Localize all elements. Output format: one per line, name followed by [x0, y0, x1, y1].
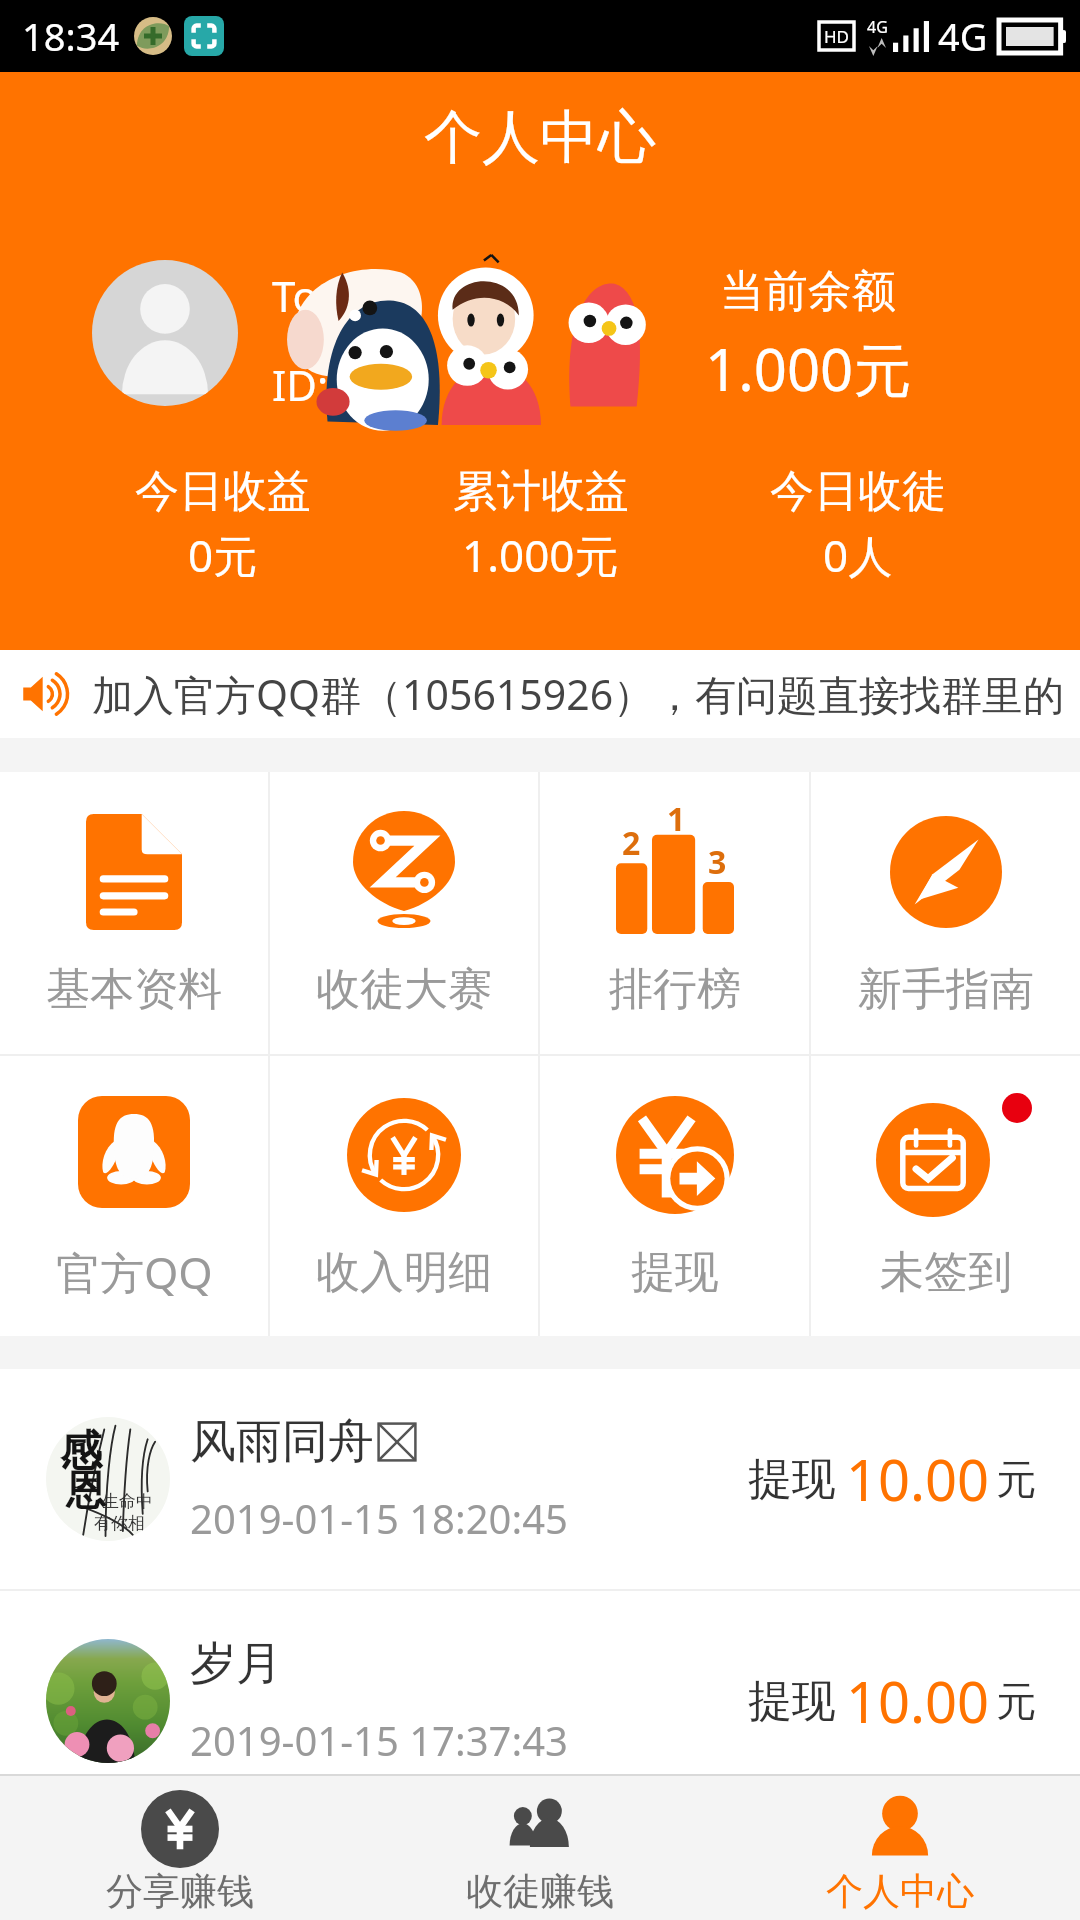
- button[interactable]: 个人中心: [720, 1776, 1080, 1920]
- staticText: 0元: [188, 525, 258, 585]
- staticText: 个人中心: [826, 1868, 974, 1915]
- staticText: 个人中心: [424, 101, 656, 174]
- staticText: 提现: [631, 1245, 719, 1300]
- button[interactable]: 加入官方QQ群（105615926），有问题直接找群里的客服: [0, 650, 1080, 738]
- staticText: 提现: [748, 1674, 836, 1729]
- button[interactable]: 岁月: [0, 1591, 1080, 1811]
- staticText: 排行榜: [609, 962, 741, 1017]
- staticText: 恩: [66, 1465, 106, 1515]
- button[interactable]: 收徒大赛: [270, 772, 538, 1054]
- staticText: 未签到: [880, 1245, 1012, 1300]
- staticText: 4G: [938, 10, 988, 62]
- staticText: 1.000元: [462, 525, 619, 585]
- button[interactable]: 收入明细: [270, 1056, 538, 1336]
- staticText: 今日收益: [135, 464, 311, 519]
- staticText: 生命中: [102, 1491, 153, 1512]
- staticText: 有你相: [94, 1513, 145, 1534]
- staticText: 当前余额: [720, 264, 896, 319]
- button[interactable]: 收徒赚钱: [360, 1776, 720, 1920]
- button[interactable]: 提现: [540, 1056, 809, 1336]
- staticText: 加入官方QQ群（105615926），有问题直接找群里的客服: [92, 666, 1080, 722]
- staticText: 今日收徒: [770, 464, 946, 519]
- staticText: HD: [824, 25, 850, 48]
- staticText: 元: [996, 1676, 1036, 1726]
- staticText: 提现: [748, 1452, 836, 1507]
- staticText: Tom...g: [272, 267, 417, 324]
- staticText: 10.00: [846, 1663, 990, 1739]
- button[interactable]: 感: [0, 1369, 1080, 1589]
- staticText: 基本资料: [46, 962, 222, 1017]
- staticText: 收入明细: [316, 1245, 492, 1300]
- button[interactable]: Profile avatar: [92, 260, 238, 406]
- button[interactable]: 基本资料: [0, 772, 268, 1054]
- staticText: 2: [622, 821, 641, 865]
- staticText: 收徒赚钱: [466, 1868, 614, 1915]
- staticText: 2019-01-15 18:20:45: [190, 1491, 568, 1545]
- staticText: 1: [667, 797, 686, 841]
- staticText: 1.000元: [705, 329, 912, 408]
- staticText: 新手指南: [858, 962, 1034, 1017]
- staticText: 岁月: [190, 1635, 282, 1693]
- staticText: 0人: [823, 525, 893, 585]
- staticText: 分享赚钱: [106, 1868, 254, 1915]
- staticText: 收徒大赛: [316, 962, 492, 1017]
- staticText: 2019-01-15 17:37:43: [190, 1713, 568, 1767]
- staticText: ID:1...5: [272, 356, 410, 413]
- staticText: 风雨同舟: [190, 1413, 374, 1471]
- button[interactable]: 未签到: [811, 1056, 1080, 1336]
- staticText: 累计收益: [453, 464, 629, 519]
- staticText: 官方QQ: [56, 1242, 213, 1302]
- button[interactable]: 新手指南: [811, 772, 1080, 1054]
- staticText: 感: [60, 1425, 102, 1478]
- staticText: 4G: [867, 16, 888, 38]
- staticText: 10.00: [846, 1441, 990, 1517]
- staticText: 元: [996, 1454, 1036, 1504]
- staticText: 3: [708, 840, 727, 884]
- button[interactable]: 官方QQ: [0, 1056, 268, 1336]
- button[interactable]: 分享赚钱: [0, 1776, 360, 1920]
- staticText: 18:34: [22, 10, 120, 62]
- button[interactable]: 2: [540, 772, 809, 1054]
